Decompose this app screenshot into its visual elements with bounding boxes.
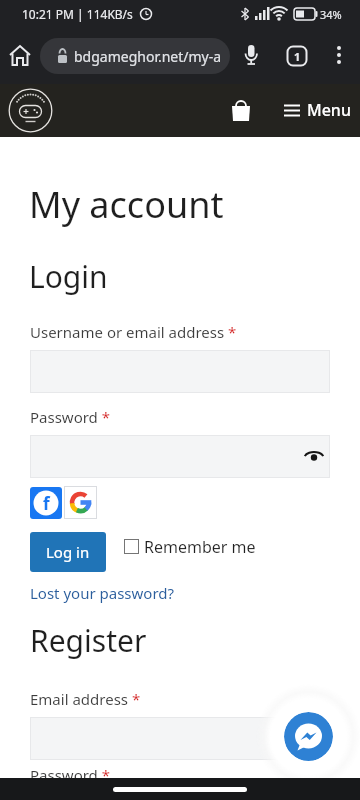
staticText: f [43, 492, 50, 515]
staticText: Log in [46, 542, 90, 562]
staticText: 10:21 PM | 114KB/s [22, 6, 133, 22]
button[interactable]: Remember me [124, 536, 256, 556]
button[interactable]: Menu [283, 96, 351, 124]
button[interactable] [229, 99, 253, 123]
staticText: 34% [320, 7, 342, 22]
staticText: Register [30, 620, 147, 661]
staticText: Menu [307, 99, 351, 121]
button[interactable]: 1 [286, 45, 308, 67]
staticText: Password * [30, 765, 111, 785]
staticText: Username or email address * [30, 322, 237, 342]
staticText: Email address * [30, 689, 141, 709]
button[interactable]: f [30, 487, 62, 519]
button[interactable] [238, 42, 264, 68]
button[interactable] [30, 717, 330, 760]
staticText: 1 [294, 49, 301, 64]
button[interactable]: bdgameghor.net/my-a [40, 38, 230, 74]
button[interactable] [30, 435, 330, 478]
staticText: bdgameghor.net/my-a [74, 47, 222, 66]
staticText: Password * [30, 407, 111, 427]
button[interactable] [284, 712, 333, 761]
button[interactable]: Lost your password? [30, 583, 175, 603]
button[interactable] [6, 42, 34, 70]
staticText: Remember me [144, 536, 256, 556]
button[interactable]: Log in [30, 532, 106, 572]
button[interactable] [64, 486, 97, 519]
staticText: My account [29, 180, 224, 229]
button[interactable] [326, 42, 352, 68]
staticText: Login [29, 256, 108, 297]
